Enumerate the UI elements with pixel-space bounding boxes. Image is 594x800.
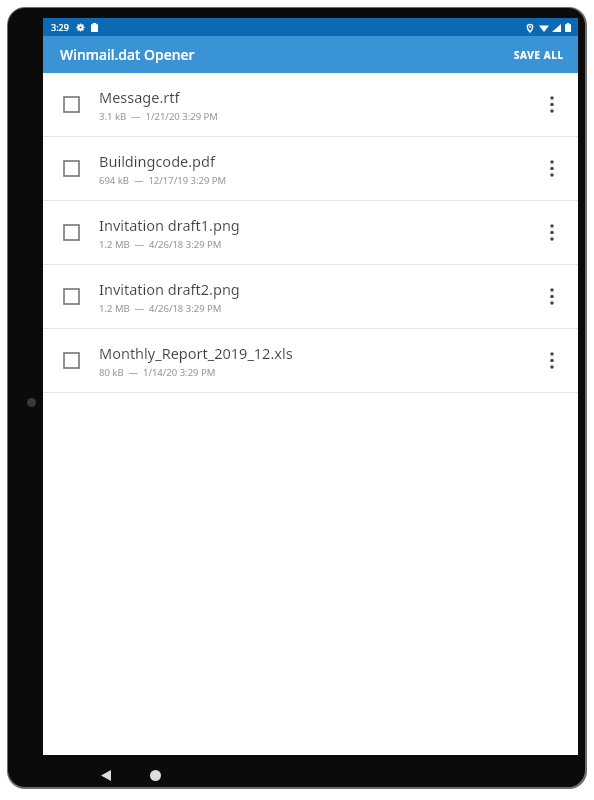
button[interactable]: Select Message.rtf bbox=[43, 73, 99, 136]
staticText: Invitation draft1.png bbox=[99, 215, 240, 235]
staticText: Invitation draft2.png bbox=[99, 279, 240, 299]
button[interactable]: More options for Monthly_Report_2019_12.… bbox=[526, 329, 578, 392]
button[interactable]: Select Invitation draft1.png bbox=[43, 201, 578, 264]
staticText: Message.rtf bbox=[99, 87, 180, 107]
staticText: SAVE ALL bbox=[514, 48, 564, 62]
button[interactable]: Select Invitation draft1.png bbox=[43, 201, 99, 264]
staticText: Winmail.dat Opener bbox=[60, 45, 195, 64]
staticText: 3:29 bbox=[51, 21, 69, 33]
button[interactable]: More options for Invitation draft2.png bbox=[526, 265, 578, 328]
staticText: Buildingcode.pdf bbox=[99, 151, 215, 171]
staticText: Monthly_Report_2019_12.xls bbox=[99, 343, 293, 363]
button[interactable]: More options for Invitation draft1.png bbox=[526, 201, 578, 264]
staticText: 1.2 MB — 4/26/18 3:29 PM bbox=[99, 238, 222, 251]
staticText: 694 kB — 12/17/19 3:29 PM bbox=[99, 174, 227, 187]
button[interactable]: Select Monthly_Report_2019_12.xls bbox=[43, 329, 99, 392]
staticText: 1.2 MB — 4/26/18 3:29 PM bbox=[99, 302, 222, 315]
button[interactable]: Select Buildingcode.pdf bbox=[43, 137, 99, 200]
button[interactable]: Home bbox=[140, 760, 170, 787]
button[interactable]: Select Buildingcode.pdf bbox=[43, 137, 578, 200]
button[interactable]: Select Monthly_Report_2019_12.xls bbox=[43, 329, 578, 392]
button[interactable]: Select Invitation draft2.png bbox=[43, 265, 578, 328]
button[interactable]: Select Message.rtf bbox=[43, 73, 578, 136]
button[interactable]: More options for Message.rtf bbox=[526, 73, 578, 136]
button[interactable]: SAVE ALL bbox=[500, 39, 578, 71]
button[interactable]: More options for Buildingcode.pdf bbox=[526, 137, 578, 200]
staticText: 80 kB — 1/14/20 3:29 PM bbox=[99, 366, 216, 379]
staticText: 3.1 kB — 1/21/20 3:29 PM bbox=[99, 110, 218, 123]
button[interactable]: Select Invitation draft2.png bbox=[43, 265, 99, 328]
button[interactable]: Back bbox=[91, 760, 121, 787]
